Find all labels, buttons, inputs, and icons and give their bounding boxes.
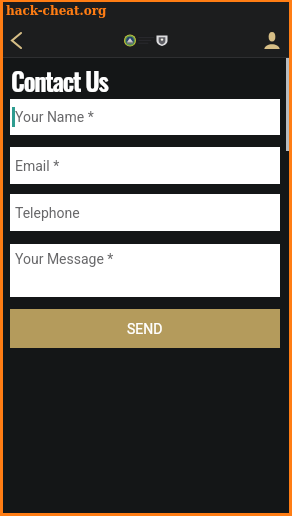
staticText: Your Name *	[15, 109, 94, 125]
staticText: SEND	[127, 321, 163, 337]
staticText: Contact Us	[11, 62, 108, 99]
button[interactable]: Account	[253, 22, 289, 58]
button[interactable]: Your Name *	[10, 99, 280, 135]
staticText: Your Message *	[15, 251, 114, 267]
button[interactable]: Email *	[10, 147, 280, 184]
staticText: Email *	[15, 158, 60, 174]
button[interactable]: Back	[3, 25, 33, 55]
button[interactable]: SEND	[10, 309, 280, 348]
button[interactable]: Telephone	[10, 194, 280, 231]
staticText: hack-cheat.org	[6, 4, 107, 18]
button[interactable]: Your Message *	[10, 244, 280, 297]
staticText: Telephone	[15, 205, 80, 221]
